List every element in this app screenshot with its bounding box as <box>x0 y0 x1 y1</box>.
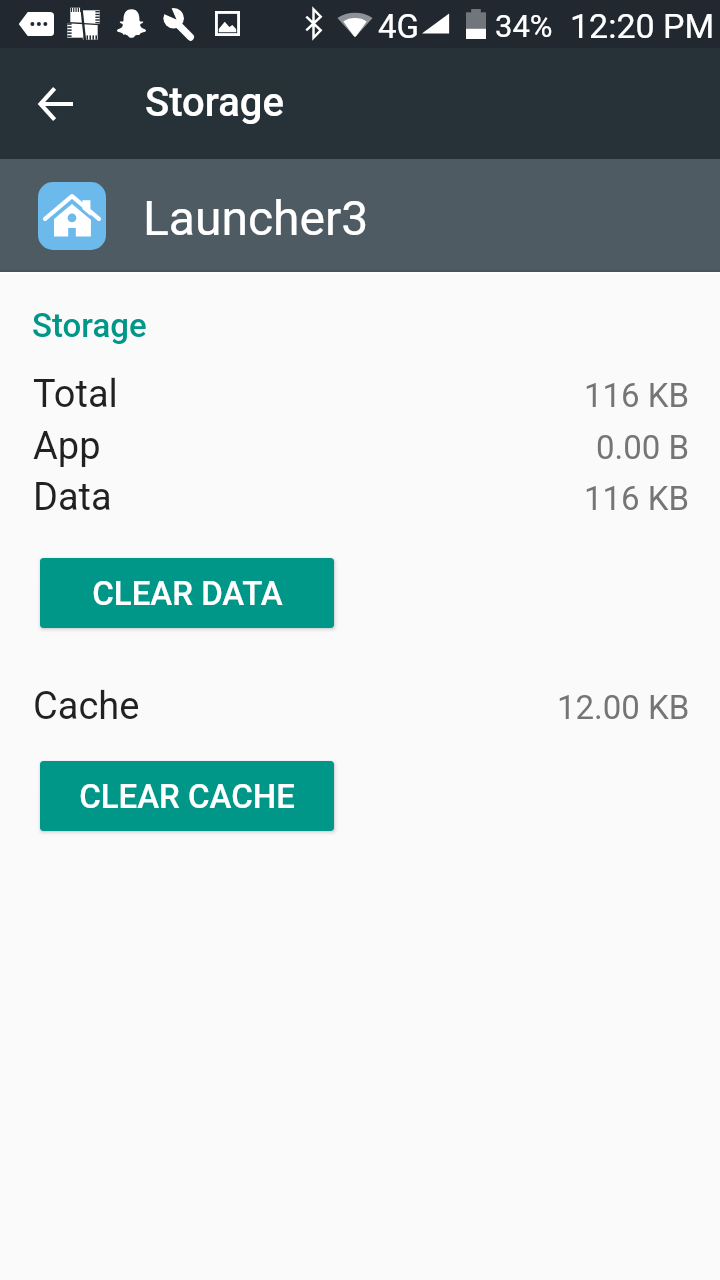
staticText: 116 KB <box>584 479 690 518</box>
staticText: 116 KB <box>584 376 690 415</box>
staticText: Storage <box>32 306 147 345</box>
button[interactable]: Navigate up <box>16 64 96 144</box>
staticText: Launcher3 <box>143 190 369 246</box>
staticText: CLEAR DATA <box>92 574 283 613</box>
button[interactable]: CLEAR DATA <box>40 558 334 628</box>
staticText: Storage <box>145 79 284 126</box>
staticText: 12:20 PM <box>570 6 715 46</box>
button[interactable]: Launcher3 <box>0 159 720 272</box>
staticText: 0.00 B <box>596 428 690 467</box>
staticText: 4G <box>378 7 420 46</box>
staticText: CLEAR CACHE <box>79 777 295 816</box>
staticText: 34% <box>495 8 553 44</box>
button[interactable]: CLEAR CACHE <box>40 761 334 831</box>
staticText: Cache <box>33 684 140 728</box>
staticText: Data <box>33 475 112 519</box>
staticText: 12.00 KB <box>557 688 690 727</box>
staticText: Total <box>33 372 118 416</box>
staticText: App <box>33 424 101 468</box>
